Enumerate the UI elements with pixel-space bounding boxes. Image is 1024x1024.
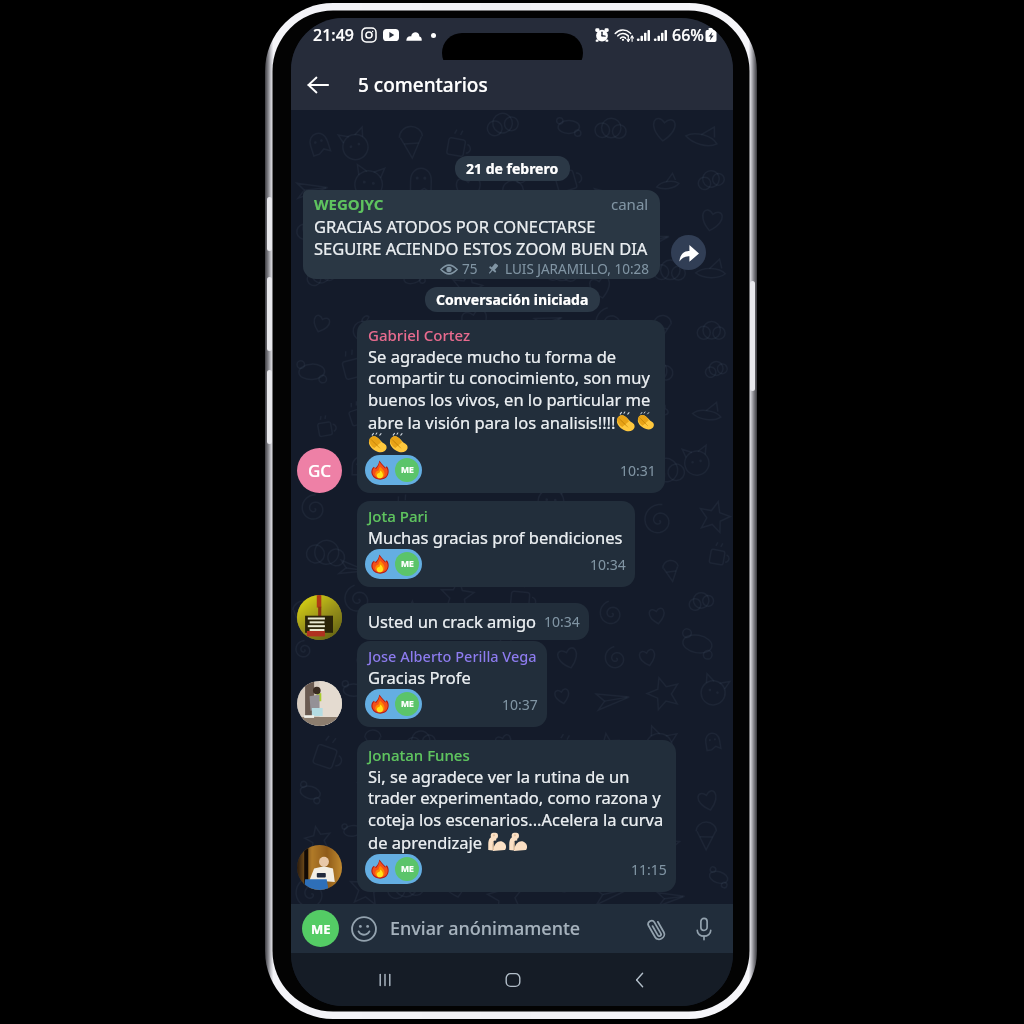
button[interactable]: ME — [365, 854, 422, 884]
button[interactable]: ME — [302, 910, 339, 947]
button[interactable]: Back — [576, 953, 703, 1006]
staticText: canal — [611, 194, 649, 214]
staticText: abre la visión para los analisis!!!! — [368, 411, 616, 433]
staticText: 5 comentarios — [358, 72, 488, 98]
staticText: Si, se agradece ver la rutina de un trad… — [368, 765, 664, 831]
staticText: Muchas gracias prof bendiciones — [368, 526, 623, 548]
staticText: SEGUIRE ACIENDO ESTOS ZOOM BUEN DIA — [314, 237, 648, 259]
staticText: 10:37 — [502, 695, 538, 714]
staticText: Jose Alberto Perilla Vega — [368, 646, 537, 666]
staticText: Jonatan Funes — [368, 745, 470, 765]
button[interactable]: Conversación iniciada — [425, 287, 600, 312]
staticText: 66% — [672, 24, 704, 46]
button[interactable]: Gabriel Cortez — [357, 320, 665, 493]
button[interactable]: Back — [296, 63, 340, 107]
button[interactable]: ME — [365, 689, 422, 719]
button[interactable] — [297, 845, 342, 890]
staticText: Usted un crack amigo — [368, 610, 537, 632]
staticText: 10:31 — [620, 461, 656, 480]
staticText: WEGOJYC — [314, 194, 384, 214]
button[interactable]: Jonatan Funes — [357, 740, 676, 892]
staticText: Enviar anónimamente — [390, 916, 581, 941]
staticText: de aprendizaje — [368, 831, 487, 853]
button[interactable]: Recents — [321, 953, 449, 1006]
staticText: 10:34 — [590, 555, 626, 574]
button[interactable]: Home — [449, 953, 576, 1006]
button[interactable]: Jose Alberto Perilla Vega — [357, 641, 547, 727]
button[interactable]: Share — [671, 235, 706, 270]
button[interactable]: ME — [365, 549, 422, 579]
staticText: ME — [401, 863, 414, 875]
button[interactable]: WEGOJYC — [303, 190, 660, 279]
staticText: ME — [401, 464, 414, 476]
staticText: ME — [401, 698, 414, 710]
staticText: ME — [401, 558, 414, 570]
staticText: Se agradece mucho tu forma de compartir … — [368, 345, 651, 411]
staticText: 11:15 — [631, 860, 667, 879]
button[interactable]: 21 de febrero — [455, 156, 570, 181]
button[interactable]: Jota Pari — [357, 501, 635, 587]
button[interactable]: ME — [365, 455, 422, 485]
button[interactable]: Emoji — [349, 914, 379, 944]
staticText: 75 — [462, 260, 478, 278]
staticText: ME — [311, 920, 331, 938]
staticText: GC — [308, 459, 332, 482]
staticText: 10:34 — [544, 612, 580, 631]
button[interactable]: Attach — [641, 914, 671, 944]
staticText: GRACIAS ATODOS POR CONECTARSE — [314, 215, 596, 237]
staticText: Conversación iniciada — [436, 290, 589, 309]
staticText: 21:49 — [313, 24, 354, 46]
staticText: Gracias Profe — [368, 666, 471, 688]
staticText: 21 de febrero — [466, 159, 559, 178]
button[interactable]: Usted un crack amigo — [357, 603, 589, 640]
button[interactable] — [297, 595, 342, 640]
button[interactable]: GC — [297, 448, 342, 493]
staticText: LUIS JARAMILLO, 10:28 — [505, 260, 649, 278]
staticText: Jota Pari — [368, 506, 428, 526]
button[interactable] — [297, 681, 342, 726]
button[interactable]: Voice message — [689, 914, 719, 944]
staticText: Gabriel Cortez — [368, 325, 471, 345]
